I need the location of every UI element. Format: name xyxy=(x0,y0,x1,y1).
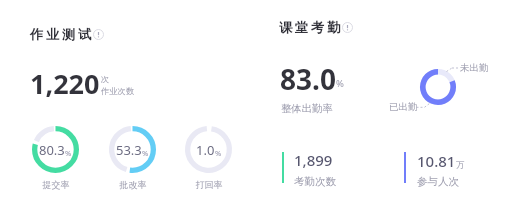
staticText: % xyxy=(142,148,149,158)
staticText: % xyxy=(215,148,222,158)
staticText: 批改率 xyxy=(113,179,153,190)
button[interactable]: 80.3 xyxy=(32,126,79,173)
staticText: 作业次数 xyxy=(101,86,135,96)
other: More info xyxy=(342,22,353,33)
staticText: % xyxy=(65,148,72,158)
staticText: 未出勤 xyxy=(460,62,489,74)
staticText: 1,899 xyxy=(294,150,333,170)
staticText: 次 xyxy=(101,74,110,84)
staticText: % xyxy=(336,77,344,90)
button[interactable]: 10.81 xyxy=(417,151,465,188)
staticText: 作业测试 xyxy=(30,26,94,43)
button[interactable] xyxy=(420,69,456,105)
staticText: 参与人次 xyxy=(417,175,459,188)
staticText: 课堂考勤 xyxy=(279,19,343,36)
staticText: 53.3 xyxy=(116,141,142,159)
button[interactable]: 作业测试 xyxy=(30,26,105,43)
button[interactable]: 1.0 xyxy=(185,126,232,173)
staticText: 万 xyxy=(456,160,465,171)
staticText: 考勤次数 xyxy=(294,175,336,188)
button[interactable]: 53.3 xyxy=(109,126,156,173)
other: More info xyxy=(93,29,104,40)
staticText: 提交率 xyxy=(36,179,76,190)
staticText: 80.3 xyxy=(39,141,65,159)
staticText: 1.0 xyxy=(196,141,215,159)
staticText: 10.81 xyxy=(417,151,456,171)
staticText: 打回率 xyxy=(189,179,229,190)
staticText: 已出勤 xyxy=(389,101,418,113)
button[interactable]: 课堂考勤 xyxy=(279,19,354,36)
staticText: 83.0 xyxy=(280,60,336,98)
button[interactable]: 1,899 xyxy=(294,150,336,188)
staticText: 1,220 xyxy=(30,65,100,102)
staticText: 整体出勤率 xyxy=(281,102,333,115)
